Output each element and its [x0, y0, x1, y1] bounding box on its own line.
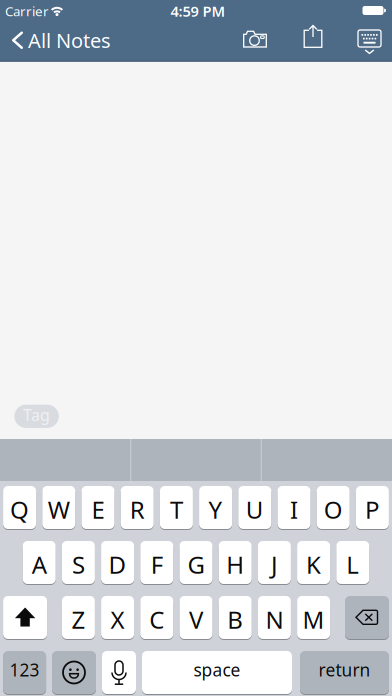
staticText: P: [365, 494, 380, 525]
button[interactable]: Z: [62, 595, 95, 639]
button[interactable]: T: [160, 485, 193, 529]
staticText: J: [271, 549, 278, 580]
staticText: B: [227, 604, 243, 635]
button[interactable]: B: [219, 595, 252, 639]
staticText: 4:59 PM: [170, 1, 225, 21]
staticText: C: [149, 604, 164, 635]
staticText: Y: [209, 494, 223, 525]
button[interactable]: N: [258, 595, 291, 639]
staticText: T: [170, 494, 183, 525]
staticText: E: [91, 494, 104, 525]
button[interactable]: [102, 650, 136, 694]
button[interactable]: V: [179, 595, 212, 639]
button[interactable]: C: [140, 595, 173, 639]
button[interactable]: Tag: [14, 405, 59, 428]
button[interactable]: [235, 21, 275, 57]
button[interactable]: Q: [3, 485, 36, 529]
button[interactable]: All Notes: [6, 20, 126, 60]
staticText: Q: [10, 494, 29, 525]
button[interactable]: D: [101, 540, 134, 584]
staticText: X: [111, 604, 125, 635]
button[interactable]: H: [219, 540, 252, 584]
button[interactable]: space: [142, 650, 292, 694]
button[interactable]: J: [258, 540, 291, 584]
button[interactable]: [345, 595, 389, 639]
button[interactable]: [3, 595, 47, 639]
staticText: I: [290, 494, 298, 525]
staticText: W: [48, 494, 70, 525]
button[interactable]: [295, 18, 331, 54]
button[interactable]: K: [297, 540, 330, 584]
staticText: M: [303, 604, 325, 635]
staticText: Z: [71, 604, 85, 635]
staticText: H: [226, 549, 244, 580]
staticText: S: [72, 549, 85, 580]
staticText: G: [187, 549, 204, 580]
button[interactable]: R: [121, 485, 154, 529]
staticText: U: [246, 494, 264, 525]
button[interactable]: U: [238, 485, 271, 529]
button[interactable]: P: [356, 485, 389, 529]
staticText: Tag: [23, 404, 50, 425]
button[interactable]: M: [297, 595, 330, 639]
staticText: return: [318, 658, 370, 681]
button[interactable]: Y: [199, 485, 232, 529]
button[interactable]: X: [101, 595, 134, 639]
staticText: V: [189, 604, 203, 635]
staticText: D: [109, 549, 127, 580]
staticText: N: [265, 604, 283, 635]
button[interactable]: S: [62, 540, 95, 584]
button[interactable]: F: [140, 540, 173, 584]
staticText: space: [193, 658, 240, 681]
staticText: Carrier: [5, 2, 49, 20]
staticText: K: [306, 549, 321, 580]
button[interactable]: [351, 25, 387, 59]
staticText: R: [130, 494, 145, 525]
staticText: A: [32, 549, 47, 580]
staticText: All Notes: [28, 27, 111, 54]
button[interactable]: [52, 650, 96, 694]
button[interactable]: E: [81, 485, 114, 529]
button[interactable]: 123: [3, 650, 46, 694]
button[interactable]: return: [300, 650, 389, 694]
button[interactable]: W: [42, 485, 75, 529]
button[interactable]: L: [336, 540, 369, 584]
staticText: L: [346, 549, 359, 580]
button[interactable]: G: [179, 540, 212, 584]
staticText: F: [151, 549, 163, 580]
button[interactable]: I: [277, 485, 310, 529]
staticText: 123: [10, 658, 40, 681]
button[interactable]: A: [23, 540, 56, 584]
button[interactable]: O: [317, 485, 350, 529]
staticText: O: [324, 494, 343, 525]
